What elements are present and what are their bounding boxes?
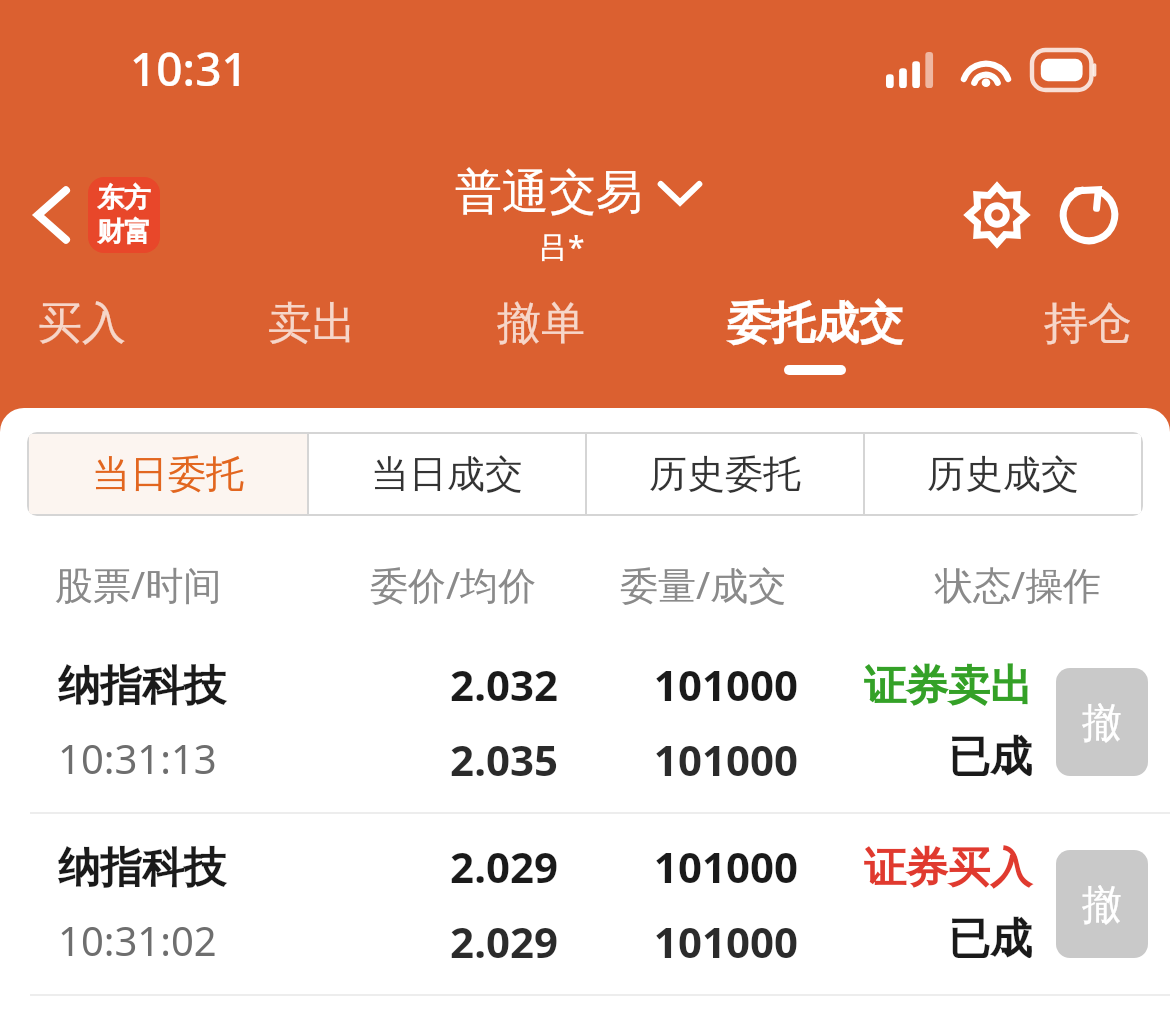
- staticText: 10:31:13: [58, 731, 217, 785]
- staticText: 状态/操作: [935, 558, 1102, 610]
- staticText: 撤: [1082, 879, 1122, 929]
- staticText: 当日成交: [371, 450, 523, 498]
- staticText: 纳指科技: [58, 660, 226, 713]
- button[interactable]: 持仓: [1030, 290, 1146, 371]
- button[interactable]: 纳指科技: [0, 814, 1170, 994]
- staticText: 证券卖出: [864, 660, 1032, 713]
- staticText: 历史成交: [927, 450, 1079, 498]
- staticText: 101000: [653, 731, 798, 788]
- button[interactable]: 卖出: [254, 290, 370, 371]
- staticText: 101000: [653, 838, 798, 895]
- staticText: 2.032: [450, 656, 558, 713]
- staticText: 已成: [948, 913, 1032, 966]
- button[interactable]: 撤单: [483, 290, 599, 371]
- button[interactable]: 当日委托: [29, 434, 307, 514]
- staticText: 持仓: [1044, 296, 1132, 351]
- staticText: 10:31: [130, 37, 248, 100]
- staticText: 财富: [97, 215, 151, 249]
- staticText: 买入: [38, 296, 126, 351]
- button[interactable]: 纳指科技: [0, 632, 1170, 812]
- staticText: 证券买入: [864, 842, 1032, 895]
- button[interactable]: 买入: [24, 290, 140, 371]
- staticText: 2.029: [450, 913, 558, 970]
- button[interactable]: 设置: [958, 176, 1036, 254]
- staticText: 撤单: [497, 296, 585, 351]
- button[interactable]: 历史委托: [587, 434, 863, 514]
- staticText: 当日委托: [92, 450, 244, 498]
- staticText: 委价/均价: [370, 558, 537, 610]
- staticText: 卖出: [268, 296, 356, 351]
- staticText: 东方: [97, 181, 151, 215]
- button[interactable]: 当日成交: [309, 434, 585, 514]
- staticText: 纳指科技: [58, 842, 226, 895]
- staticText: 101000: [653, 913, 798, 970]
- button[interactable]: 普通交易: [455, 163, 703, 267]
- staticText: 吕*: [538, 226, 585, 267]
- staticText: 2.029: [450, 838, 558, 895]
- staticText: 撤: [1082, 697, 1122, 747]
- button[interactable]: 撤单: [1056, 668, 1148, 776]
- button[interactable]: 撤单: [1056, 850, 1148, 958]
- staticText: 10:31:02: [58, 913, 217, 967]
- staticText: 历史委托: [649, 450, 801, 498]
- staticText: 101000: [653, 656, 798, 713]
- staticText: 委量/成交: [620, 558, 787, 610]
- staticText: 2.035: [450, 731, 558, 788]
- button[interactable]: 刷新: [1050, 176, 1128, 254]
- button[interactable]: 委托成交: [713, 290, 917, 381]
- button[interactable]: 历史成交: [865, 434, 1141, 514]
- staticText: 已成: [948, 731, 1032, 784]
- staticText: 委托成交: [727, 296, 903, 351]
- staticText: 普通交易: [455, 163, 643, 222]
- staticText: 股票/时间: [55, 558, 222, 610]
- button[interactable]: 返回 东方财富: [22, 169, 170, 261]
